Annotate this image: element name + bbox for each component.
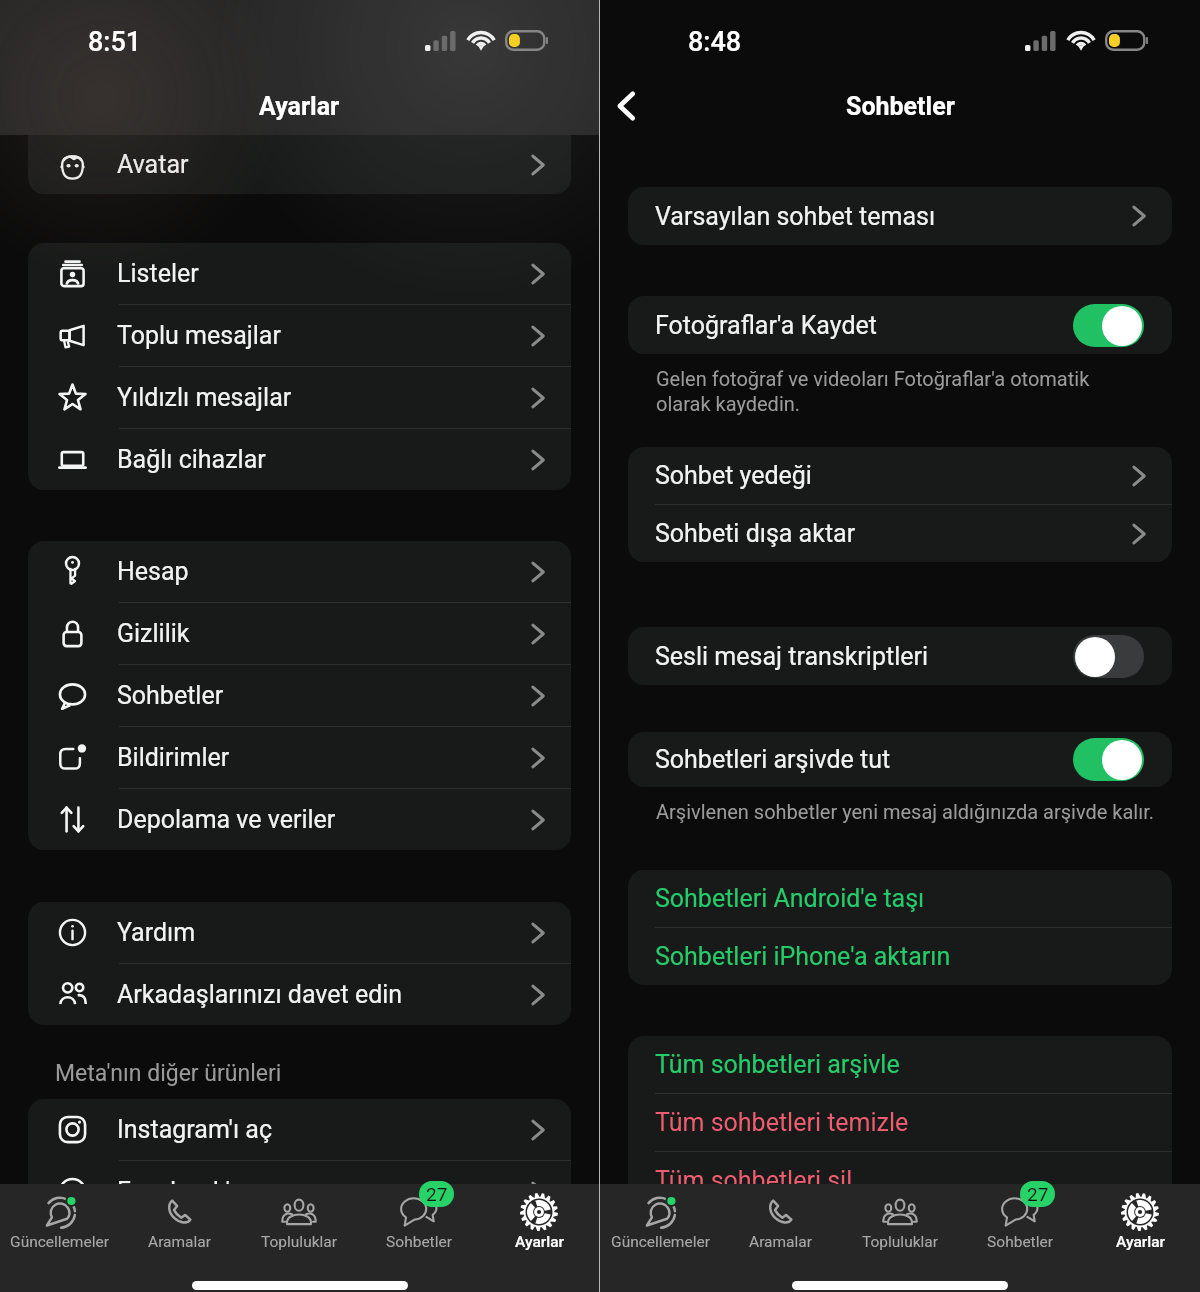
button[interactable]: Güncellemeler (0, 1184, 119, 1262)
staticText: Sohbetleri iPhone'a aktarın (655, 942, 951, 971)
button[interactable]: Tüm sohbetleri arşivle (628, 1036, 1172, 1093)
staticText: Tüm sohbetleri temizle (655, 1108, 909, 1137)
button[interactable]: Tüm sohbetleri sil (628, 1152, 1172, 1209)
button[interactable]: Facebook'u aç (28, 1161, 571, 1222)
button[interactable]: 27 (359, 1184, 479, 1262)
staticText: Sohbetleri Android'e taşı (655, 884, 925, 913)
staticText: Fotoğraflar'a Kaydet (655, 311, 877, 340)
staticText: Sohbetler (846, 92, 955, 121)
staticText: Avatar (117, 150, 189, 179)
button[interactable]: Sohbet yedeği (628, 447, 1172, 504)
staticText: Ayarlar (1116, 1233, 1165, 1251)
button[interactable]: Topluluklar (239, 1184, 359, 1262)
staticText: 27 (1027, 1183, 1049, 1205)
button[interactable]: Bildirimler (28, 727, 571, 788)
staticText: Sohbetler (117, 681, 224, 710)
button[interactable]: Toplu mesajlar (28, 305, 571, 366)
staticText: Hesap (117, 557, 189, 586)
staticText: Aramalar (148, 1233, 211, 1251)
staticText: Listeler (117, 259, 199, 288)
button[interactable]: Yıldızlı mesajlar (28, 367, 571, 428)
button[interactable]: Sesli mesaj transkriptleri (628, 627, 1172, 685)
staticText: Bağlı cihazlar (117, 445, 266, 474)
button[interactable]: Topluluklar (840, 1184, 960, 1262)
button[interactable]: Back (600, 79, 654, 133)
button[interactable]: Instagram'ı aç (28, 1099, 571, 1160)
button[interactable]: Ayarlar (479, 1184, 599, 1262)
button[interactable]: Sohbetleri iPhone'a aktarın (628, 928, 1172, 985)
staticText: Gelen fotoğraf ve videoları Fotoğraflar'… (656, 367, 1090, 416)
staticText: Instagram'ı aç (117, 1115, 273, 1144)
button[interactable]: Ayarlar (1080, 1184, 1200, 1262)
staticText: Tüm sohbetleri arşivle (655, 1050, 900, 1079)
button[interactable]: Bağlı cihazlar (28, 429, 571, 490)
staticText: Sohbet yedeği (655, 461, 812, 490)
button[interactable]: Sohbetleri arşivde tut (628, 732, 1172, 787)
button[interactable]: Sohbetleri Android'e taşı (628, 870, 1172, 927)
staticText: 8:51 (88, 26, 142, 58)
staticText: 8:48 (688, 26, 742, 58)
button[interactable]: Aramalar (119, 1184, 239, 1262)
button[interactable]: Varsayılan sohbet teması (628, 187, 1172, 245)
staticText: Tüm sohbetleri sil (655, 1166, 853, 1195)
staticText: Sesli mesaj transkriptleri (655, 642, 929, 671)
staticText: Güncellemeler (611, 1233, 710, 1251)
button[interactable]: Yardım (28, 902, 571, 963)
staticText: Bildirimler (117, 743, 230, 772)
button[interactable]: Güncellemeler (600, 1184, 720, 1262)
staticText: Topluluklar (261, 1233, 337, 1251)
staticText: Gizlilik (117, 619, 190, 648)
button[interactable]: Fotoğraflar'a Kaydet (628, 296, 1172, 354)
staticText: Meta'nın diğer ürünleri (55, 1060, 282, 1087)
button[interactable]: Depolama ve veriler (28, 789, 571, 850)
button[interactable]: Listeler (28, 243, 571, 304)
staticText: Sohbetleri arşivde tut (655, 745, 891, 774)
button[interactable]: Sohbetler (28, 665, 571, 726)
staticText: Güncellemeler (10, 1233, 109, 1251)
staticText: Sohbeti dışa aktar (655, 519, 856, 548)
staticText: Sohbetler (987, 1233, 1053, 1251)
button[interactable]: Gizlilik (28, 603, 571, 664)
staticText: Depolama ve veriler (117, 805, 336, 834)
button[interactable]: Aramalar (720, 1184, 840, 1262)
staticText: Ayarlar (515, 1233, 564, 1251)
button[interactable]: 27 (960, 1184, 1080, 1262)
staticText: Ayarlar (259, 92, 340, 121)
staticText: Aramalar (749, 1233, 812, 1251)
staticText: Yardım (117, 918, 196, 947)
button[interactable]: Arkadaşlarınızı davet edin (28, 964, 571, 1025)
staticText: Arşivlenen sohbetler yeni mesaj aldığını… (656, 800, 1155, 823)
button[interactable]: Hesap (28, 541, 571, 602)
staticText: Facebook'u aç (117, 1177, 277, 1206)
button[interactable]: Sohbeti dışa aktar (628, 505, 1172, 562)
staticText: Sohbetler (386, 1233, 452, 1251)
staticText: 27 (426, 1183, 448, 1205)
staticText: Varsayılan sohbet teması (655, 202, 936, 231)
button[interactable]: Tüm sohbetleri temizle (628, 1094, 1172, 1151)
staticText: Topluluklar (862, 1233, 938, 1251)
staticText: Toplu mesajlar (117, 321, 281, 350)
staticText: Arkadaşlarınızı davet edin (117, 980, 403, 1009)
staticText: Yıldızlı mesajlar (117, 383, 292, 412)
button[interactable]: Avatar (28, 135, 571, 194)
